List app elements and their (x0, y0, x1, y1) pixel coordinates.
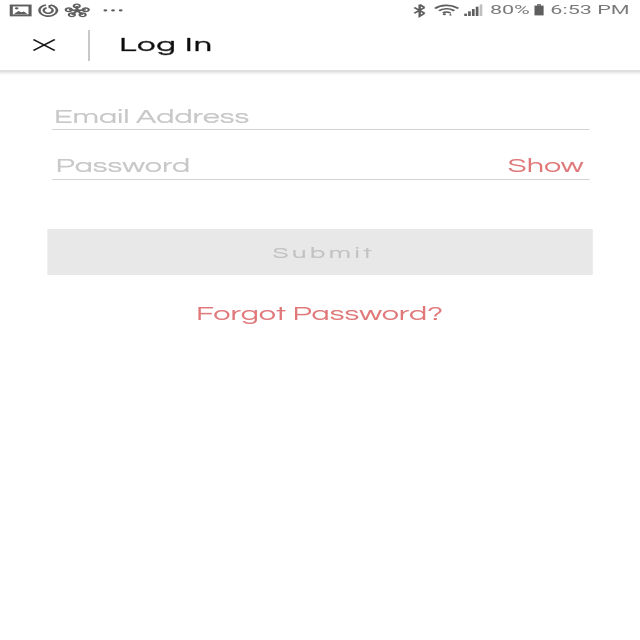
staticText: 6:53 PM (550, 2, 630, 17)
button[interactable]: Email Address (52, 103, 590, 130)
staticText: Show (508, 157, 585, 176)
staticText: Log In (119, 35, 214, 55)
staticText: Email Address (54, 108, 250, 127)
staticText: 80% (490, 2, 531, 17)
button[interactable]: Password (52, 153, 590, 180)
staticText: Submit (273, 245, 376, 261)
button[interactable]: Forgot Password? (196, 305, 444, 324)
staticText: Password (55, 157, 191, 176)
button[interactable]: Close (0, 22, 88, 68)
staticText: Log In (119, 35, 214, 55)
button[interactable]: Show (501, 153, 589, 179)
button[interactable]: Submit (47, 229, 593, 275)
